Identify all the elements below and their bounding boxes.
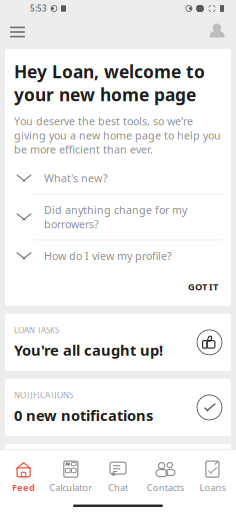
staticText: What's new? <box>44 171 108 185</box>
staticText: Feed <box>12 481 35 493</box>
staticText: You're all caught up! <box>14 340 163 360</box>
button[interactable]: Share App <box>14 486 222 505</box>
button[interactable]: Menu <box>2 19 33 45</box>
button[interactable]: NOTIFICATIONS <box>5 379 231 436</box>
staticText: Hey Loan, welcome to your new home page <box>14 60 205 106</box>
button[interactable]: How do I view my profile? <box>14 240 222 271</box>
staticText: GOT IT <box>188 280 218 293</box>
button[interactable]: Did anything change for my borrowers? <box>14 194 222 240</box>
staticText: Loans <box>199 481 225 493</box>
button[interactable]: GOT IT <box>184 275 222 298</box>
staticText: Did anything change for my borrowers? <box>44 203 187 231</box>
staticText: Chat <box>108 481 128 493</box>
button[interactable]: Contacts <box>142 455 189 498</box>
staticText: You deserve the best tools, so we're giv… <box>14 114 221 156</box>
staticText: 5:53 <box>30 3 47 14</box>
staticText: Calculator <box>49 481 92 493</box>
staticText: Share App <box>40 488 93 503</box>
staticText: LOAN TASKS <box>14 325 59 335</box>
staticText: Quick Actions <box>14 455 115 474</box>
button[interactable]: Feed <box>0 455 47 498</box>
button[interactable]: Calculator <box>47 455 94 498</box>
button[interactable]: Chat <box>94 455 142 498</box>
staticText: How do I view my profile? <box>44 249 172 263</box>
button[interactable]: Loans <box>189 455 236 498</box>
staticText: NOTIFICATIONS <box>14 390 73 400</box>
button[interactable]: What's new? <box>14 162 222 194</box>
button[interactable]: Profile <box>200 15 234 49</box>
staticText: 0 new notifications <box>14 405 153 425</box>
button[interactable]: LOAN TASKS <box>5 314 231 371</box>
staticText: Contacts <box>147 481 184 493</box>
